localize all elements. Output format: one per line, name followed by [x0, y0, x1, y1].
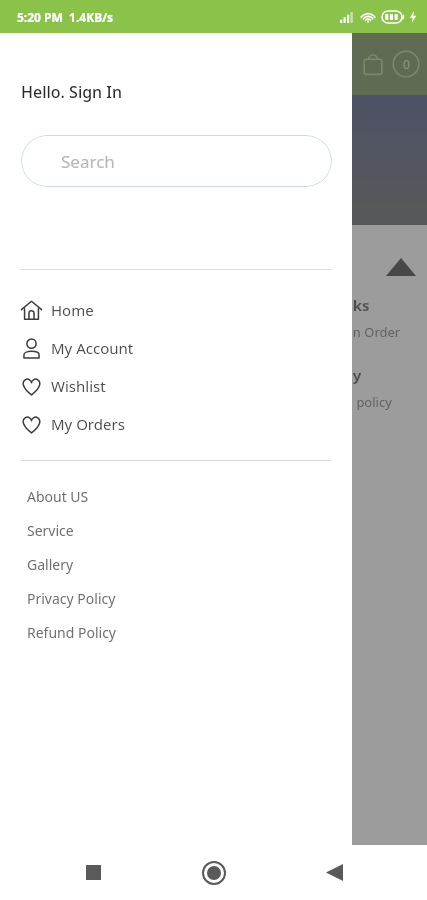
staticText: cy: [345, 365, 362, 385]
staticText: d policy: [345, 393, 392, 411]
staticText: My Account: [51, 338, 134, 358]
staticText: Search: [61, 150, 115, 173]
button[interactable]: Wishlist: [0, 367, 352, 405]
button[interactable]: Home: [0, 291, 352, 329]
staticText: Wishlist: [51, 376, 106, 396]
button[interactable]: Gallery: [0, 547, 352, 581]
button[interactable]: About US: [0, 479, 352, 513]
button[interactable]: Recent apps: [65, 845, 121, 900]
staticText: 5:20 PM 1.4KB/s: [17, 9, 114, 25]
button[interactable]: My Account: [0, 329, 352, 367]
button[interactable]: Privacy Policy: [0, 581, 352, 615]
staticText: Service: [27, 521, 74, 540]
button[interactable]: Refund Policy: [0, 615, 352, 649]
staticText: Privacy Policy: [27, 589, 116, 608]
staticText: on Order: [345, 323, 401, 341]
staticText: Gallery: [27, 555, 74, 574]
staticText: 0: [403, 56, 410, 72]
staticText: My Orders: [51, 414, 125, 434]
button[interactable]: My Orders: [0, 405, 352, 443]
staticText: Refund Policy: [27, 623, 116, 642]
staticText: Home: [51, 300, 94, 320]
button[interactable]: Search: [21, 135, 332, 187]
staticText: About US: [27, 487, 89, 506]
button[interactable]: Service: [0, 513, 352, 547]
button[interactable]: Back: [306, 845, 362, 900]
staticText: cks: [345, 295, 370, 315]
other: Shopping bag: [360, 51, 386, 77]
staticText: Hello. Sign In: [21, 81, 123, 103]
button[interactable]: Home: [186, 845, 242, 900]
